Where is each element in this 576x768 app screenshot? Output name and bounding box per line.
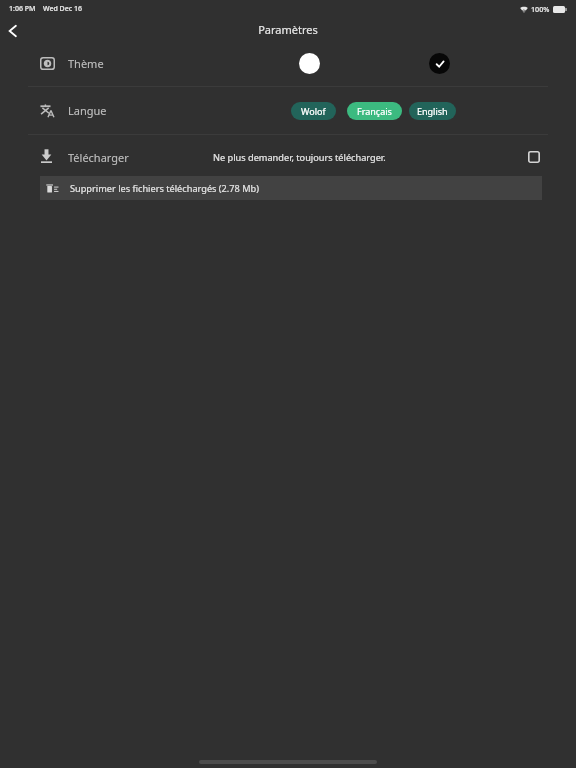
- staticText: Paramètres: [258, 22, 318, 37]
- button[interactable]: Langue: [0, 90, 576, 132]
- button[interactable]: Télécharger: [0, 138, 576, 174]
- button[interactable]: Light theme: [299, 53, 320, 74]
- staticText: Télécharger: [68, 150, 129, 165]
- button[interactable]: English: [409, 102, 456, 120]
- staticText: 100%: [531, 4, 550, 14]
- button[interactable]: Wolof: [291, 102, 336, 120]
- button[interactable]: Dark theme: [429, 53, 450, 74]
- staticText: Ne plus demander, toujours télécharger.: [213, 151, 386, 164]
- button[interactable]: Ne plus demander: [524, 147, 544, 167]
- button[interactable]: Thème: [0, 45, 576, 85]
- staticText: Langue: [68, 103, 107, 118]
- staticText: Thème: [68, 56, 104, 71]
- staticText: 1:06 PM: [9, 4, 36, 14]
- staticText: English: [417, 105, 448, 117]
- staticText: Supprimer les fichiers téléchargés (2.78…: [70, 182, 259, 195]
- staticText: Français: [357, 105, 392, 117]
- staticText: Wolof: [301, 105, 326, 117]
- button[interactable]: Back: [0, 17, 24, 45]
- button[interactable]: Supprimer les fichiers téléchargés (2.78…: [40, 176, 542, 200]
- staticText: Wed Dec 16: [43, 4, 83, 14]
- button[interactable]: Français: [347, 102, 402, 120]
